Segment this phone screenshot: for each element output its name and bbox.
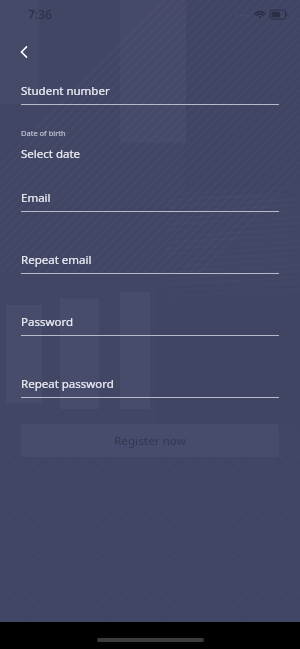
- button[interactable]: Repeat password: [21, 376, 279, 398]
- button[interactable]: Back: [6, 34, 42, 70]
- button[interactable]: Email: [21, 190, 279, 212]
- staticText: Repeat password: [21, 376, 114, 392]
- staticText: Student number: [21, 83, 110, 99]
- staticText: Register now: [114, 433, 186, 449]
- button[interactable]: Register now: [21, 424, 279, 457]
- staticText: 7:36: [28, 6, 52, 22]
- button[interactable]: Student number: [21, 83, 279, 105]
- button[interactable]: Repeat email: [21, 252, 279, 274]
- button[interactable]: Password: [21, 314, 279, 336]
- staticText: Email: [21, 190, 51, 206]
- staticText: Repeat email: [21, 252, 92, 268]
- staticText: Date of birth: [21, 128, 66, 138]
- staticText: Select date: [21, 146, 81, 162]
- button[interactable]: Select date: [21, 146, 279, 162]
- staticText: Password: [21, 314, 74, 330]
